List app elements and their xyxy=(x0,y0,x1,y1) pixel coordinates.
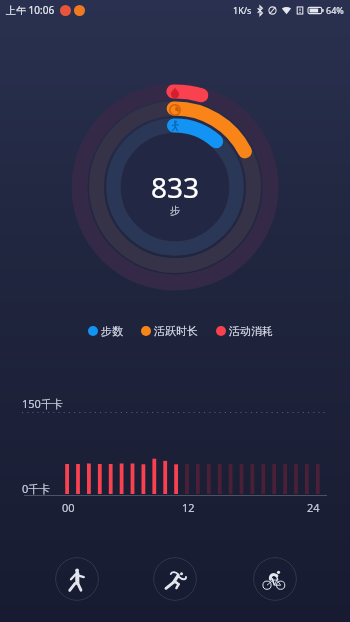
staticText: 步数 xyxy=(101,324,123,338)
staticText: 上午 10:06 xyxy=(6,3,55,17)
staticText: 1K/s xyxy=(233,4,252,16)
button[interactable]: Run xyxy=(153,557,197,601)
staticText: 活动消耗 xyxy=(229,324,273,338)
staticText: 0千卡 xyxy=(22,481,51,496)
staticText: 24 xyxy=(307,500,320,515)
staticText: 活跃时长 xyxy=(154,324,198,338)
button[interactable]: Cycle xyxy=(253,557,297,601)
button[interactable]: Walk xyxy=(55,557,99,601)
staticText: 833 xyxy=(151,168,200,206)
staticText: 00 xyxy=(62,500,75,515)
staticText: 150千卡 xyxy=(22,396,63,411)
staticText: 步 xyxy=(170,204,180,217)
staticText: 12 xyxy=(182,500,195,515)
staticText: 64% xyxy=(326,4,344,16)
